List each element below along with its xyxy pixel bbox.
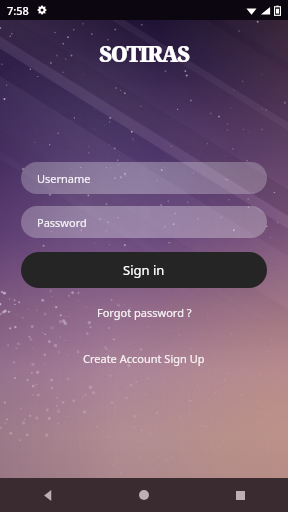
button[interactable]: Home bbox=[96, 478, 192, 512]
staticText: Create Account Sign Up bbox=[83, 351, 205, 366]
staticText: Sign in bbox=[123, 261, 165, 279]
button[interactable]: Back bbox=[0, 478, 96, 512]
staticText: SOTIRAS bbox=[99, 40, 189, 69]
button[interactable]: Username bbox=[21, 162, 267, 194]
button[interactable]: Password bbox=[21, 206, 267, 238]
staticText: Username bbox=[37, 171, 91, 186]
button[interactable]: Sign in bbox=[21, 252, 267, 288]
button[interactable]: Create Account Sign Up bbox=[0, 351, 288, 366]
staticText: Password bbox=[37, 215, 87, 230]
button[interactable]: Forgot password ? bbox=[0, 305, 288, 320]
button[interactable]: Recent apps bbox=[192, 478, 288, 512]
staticText: 7:58 bbox=[7, 3, 29, 18]
staticText: Forgot password ? bbox=[97, 305, 192, 320]
